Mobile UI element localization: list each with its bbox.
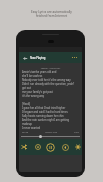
staticText: Sally hoots running down her chin xyxy=(22,114,64,118)
staticText: me your family's got past xyxy=(22,90,53,94)
staticText: [Hook] xyxy=(22,102,31,106)
staticText: Nobody ever told her it's the wrong way xyxy=(22,78,71,82)
button[interactable]: Pause xyxy=(44,141,56,153)
staticText: Spoken - Wrong Way xyxy=(22,67,79,70)
staticText: 00:39 xyxy=(22,130,29,133)
staticText: Didn't run already with the question, ye… xyxy=(22,82,75,86)
button[interactable]: Volume xyxy=(59,141,71,153)
staticText: makeup xyxy=(22,122,32,126)
staticText: Now Playing xyxy=(30,56,46,60)
staticText: About 4:02 xyxy=(45,130,58,133)
staticText: And the rain sunken night I am getting xyxy=(22,118,70,122)
staticText: Annie's twelve years old and xyxy=(22,70,57,74)
staticText: fetched from Internet xyxy=(36,14,68,18)
staticText: 4:02 xyxy=(74,130,79,133)
button[interactable]: Repeat xyxy=(32,141,44,153)
button[interactable]: Favourite xyxy=(72,141,82,153)
staticText: she'll be scarless xyxy=(22,74,43,78)
staticText: got out xyxy=(22,86,31,90)
button[interactable]: Back xyxy=(21,54,29,62)
staticText: it's the wrong way xyxy=(22,94,45,98)
staticText: Easy Lyrics are automatically xyxy=(31,10,72,14)
button[interactable]: Shuffle xyxy=(19,141,30,153)
staticText: I gave her all that I had tried higher xyxy=(22,106,66,110)
staticText: I forgave and said I had to hard times xyxy=(22,110,68,114)
button[interactable]: More options xyxy=(70,53,79,62)
staticText: I never wanted xyxy=(22,126,41,130)
